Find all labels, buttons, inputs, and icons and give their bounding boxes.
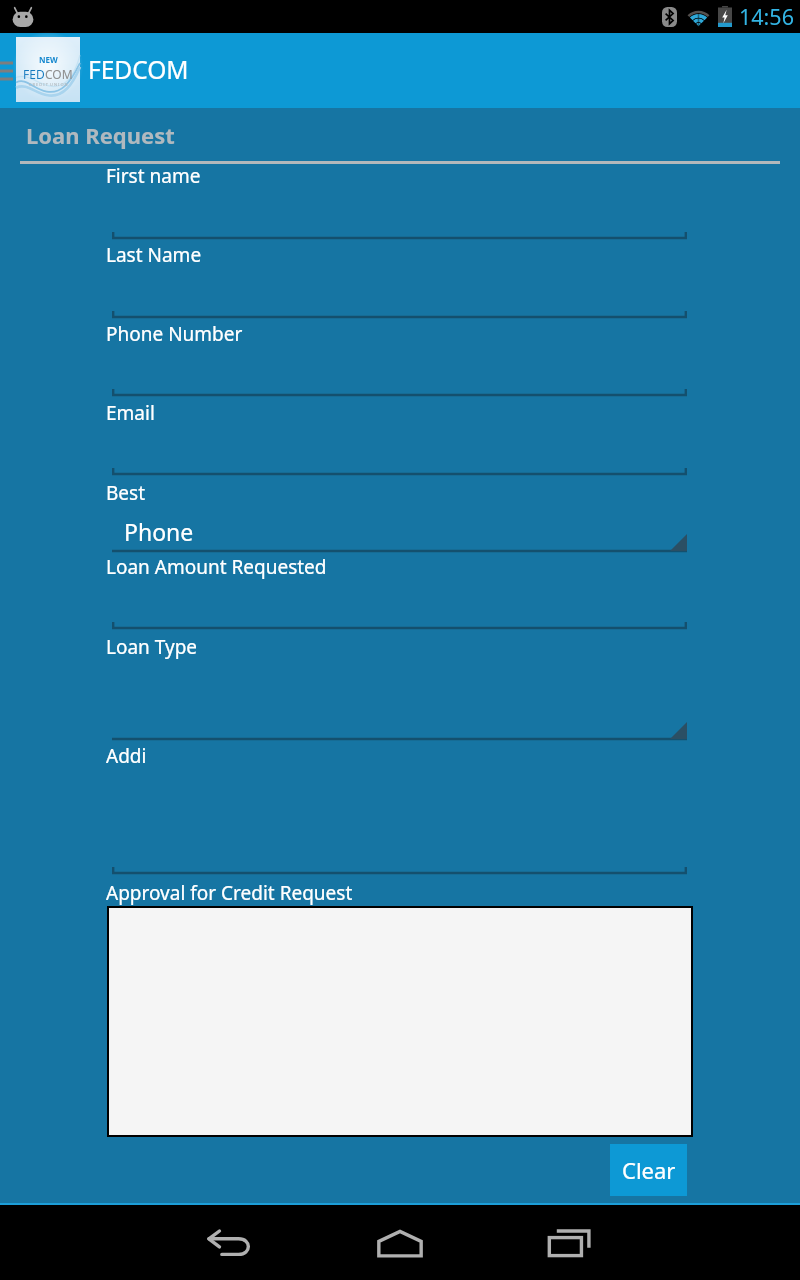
- staticText: Email: [106, 400, 155, 426]
- staticText: Best: [106, 480, 146, 506]
- button[interactable]: Home: [370, 1213, 430, 1273]
- staticText: First name: [106, 163, 201, 189]
- staticText: NEW: [39, 54, 58, 65]
- button[interactable]: Back: [200, 1213, 260, 1273]
- staticText: FEDCOM: [88, 53, 189, 86]
- staticText: Phone: [124, 516, 194, 547]
- button[interactable]: Email: [106, 396, 687, 477]
- button[interactable]: Loan Amount Requested: [106, 550, 687, 631]
- button[interactable]: Phone: [106, 502, 687, 552]
- button[interactable]: Addi: [106, 739, 687, 876]
- staticText: Phone Number: [106, 321, 243, 347]
- staticText: Last Name: [106, 242, 202, 268]
- button[interactable]: Phone Number: [106, 317, 687, 398]
- staticText: FED: [23, 66, 45, 82]
- button[interactable]: [106, 656, 687, 740]
- staticText: 14:56: [739, 2, 794, 31]
- staticText: Approval for Credit Request: [106, 880, 353, 906]
- button[interactable]: First name: [106, 159, 687, 241]
- staticText: C R E D I T U N I O N: [29, 82, 68, 87]
- button[interactable]: Last Name: [106, 238, 687, 320]
- staticText: Loan Request: [26, 120, 175, 150]
- staticText: Addi: [106, 743, 147, 769]
- staticText: Loan Amount Requested: [106, 554, 327, 580]
- button[interactable]: Recent apps: [540, 1213, 600, 1273]
- staticText: COM: [45, 66, 73, 82]
- staticText: Clear: [622, 1155, 676, 1185]
- button[interactable]: Open navigation menu: [0, 48, 13, 94]
- button[interactable]: Clear: [610, 1144, 687, 1196]
- staticText: Loan Type: [106, 634, 198, 660]
